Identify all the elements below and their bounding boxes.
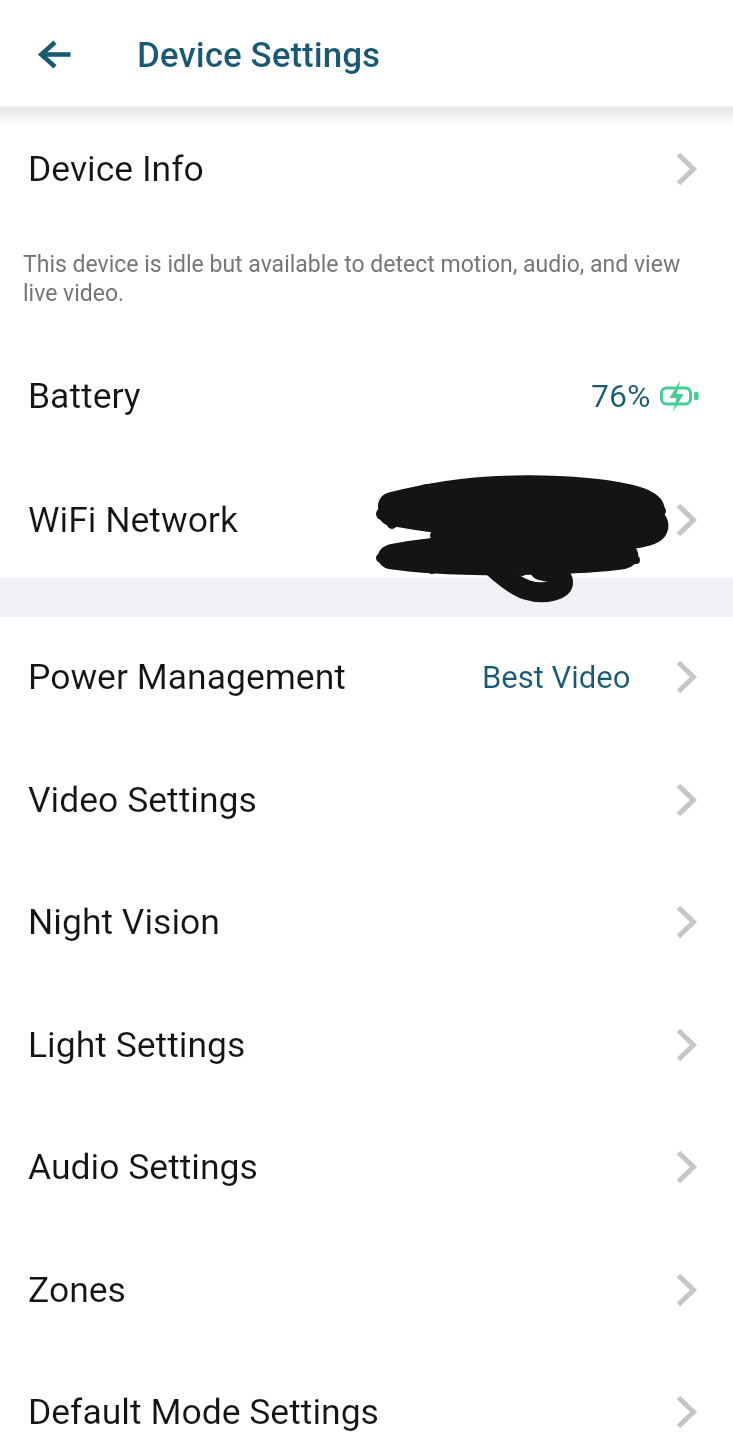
button[interactable]: Video Settings [0,739,733,861]
button[interactable]: WiFi Network [0,463,733,578]
staticText: Default Mode Settings [28,1391,379,1433]
staticText: Battery [28,375,141,417]
button[interactable]: Default Mode Settings [0,1351,733,1440]
staticText: This device is idle but available to det… [23,251,687,307]
staticText: 76% [591,377,651,415]
staticText: Video Settings [28,779,257,821]
staticText: Best Video [482,659,631,695]
button[interactable]: Back [12,9,98,95]
button[interactable]: Power Management [0,616,733,738]
staticText: Light Settings [28,1024,246,1066]
button[interactable]: Night Vision [0,861,733,983]
staticText: Power Management [28,656,346,698]
staticText: WiFi Network [28,499,238,541]
staticText: Zones [28,1269,126,1311]
staticText: Device Info [28,148,204,190]
button[interactable]: Audio Settings [0,1106,733,1228]
staticText: Audio Settings [28,1146,258,1188]
staticText: Night Vision [28,901,220,943]
staticText: Device Settings [137,35,381,76]
button[interactable]: Battery [0,353,733,463]
button[interactable]: Device Info [0,126,733,206]
button[interactable]: Light Settings [0,984,733,1106]
button[interactable]: Zones [0,1229,733,1351]
